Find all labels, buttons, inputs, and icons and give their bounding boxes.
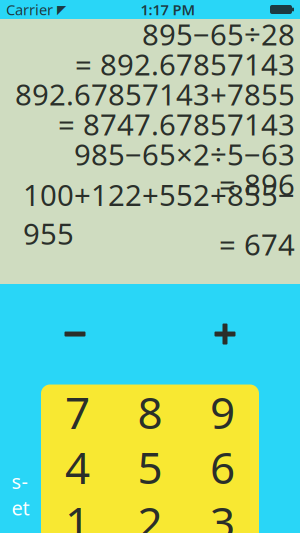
staticText: 9	[210, 383, 235, 441]
staticText: 1	[65, 493, 90, 533]
button[interactable]: 1	[41, 494, 114, 533]
button[interactable]: 6	[186, 439, 259, 494]
staticText: Carrier	[6, 0, 53, 19]
button[interactable]: 3	[186, 494, 259, 533]
button[interactable]: Subtract	[0, 284, 150, 384]
staticText: set	[11, 468, 29, 521]
staticText: 3	[210, 493, 235, 533]
button[interactable]: 9	[186, 384, 259, 439]
staticText: ◤	[57, 3, 66, 16]
staticText: 5	[137, 438, 162, 496]
button[interactable]: 5	[114, 439, 186, 494]
button[interactable]: Add	[150, 284, 300, 384]
staticText: = 892.67857143	[75, 44, 295, 83]
staticText: 4	[65, 438, 90, 496]
staticText: 7	[65, 383, 90, 441]
staticText: = 674	[219, 224, 295, 263]
button[interactable]: 4	[41, 439, 114, 494]
button[interactable]: set	[3, 464, 37, 525]
button[interactable]: 8	[114, 384, 186, 439]
staticText: 985−65×2÷5−63	[74, 134, 295, 173]
staticText: 100+122+552+855−955	[23, 175, 295, 253]
button[interactable]: 7	[41, 384, 114, 439]
staticText: = 896	[219, 164, 295, 203]
staticText: 2	[137, 493, 162, 533]
staticText: 1:17 PM	[140, 0, 195, 19]
staticText: 8	[137, 383, 162, 441]
staticText: 892.67857143+7855	[15, 74, 295, 113]
button[interactable]: 2	[114, 494, 186, 533]
staticText: 895−65÷28	[142, 14, 295, 53]
staticText: = 8747.67857143	[58, 104, 295, 143]
staticText: 6	[210, 438, 235, 496]
